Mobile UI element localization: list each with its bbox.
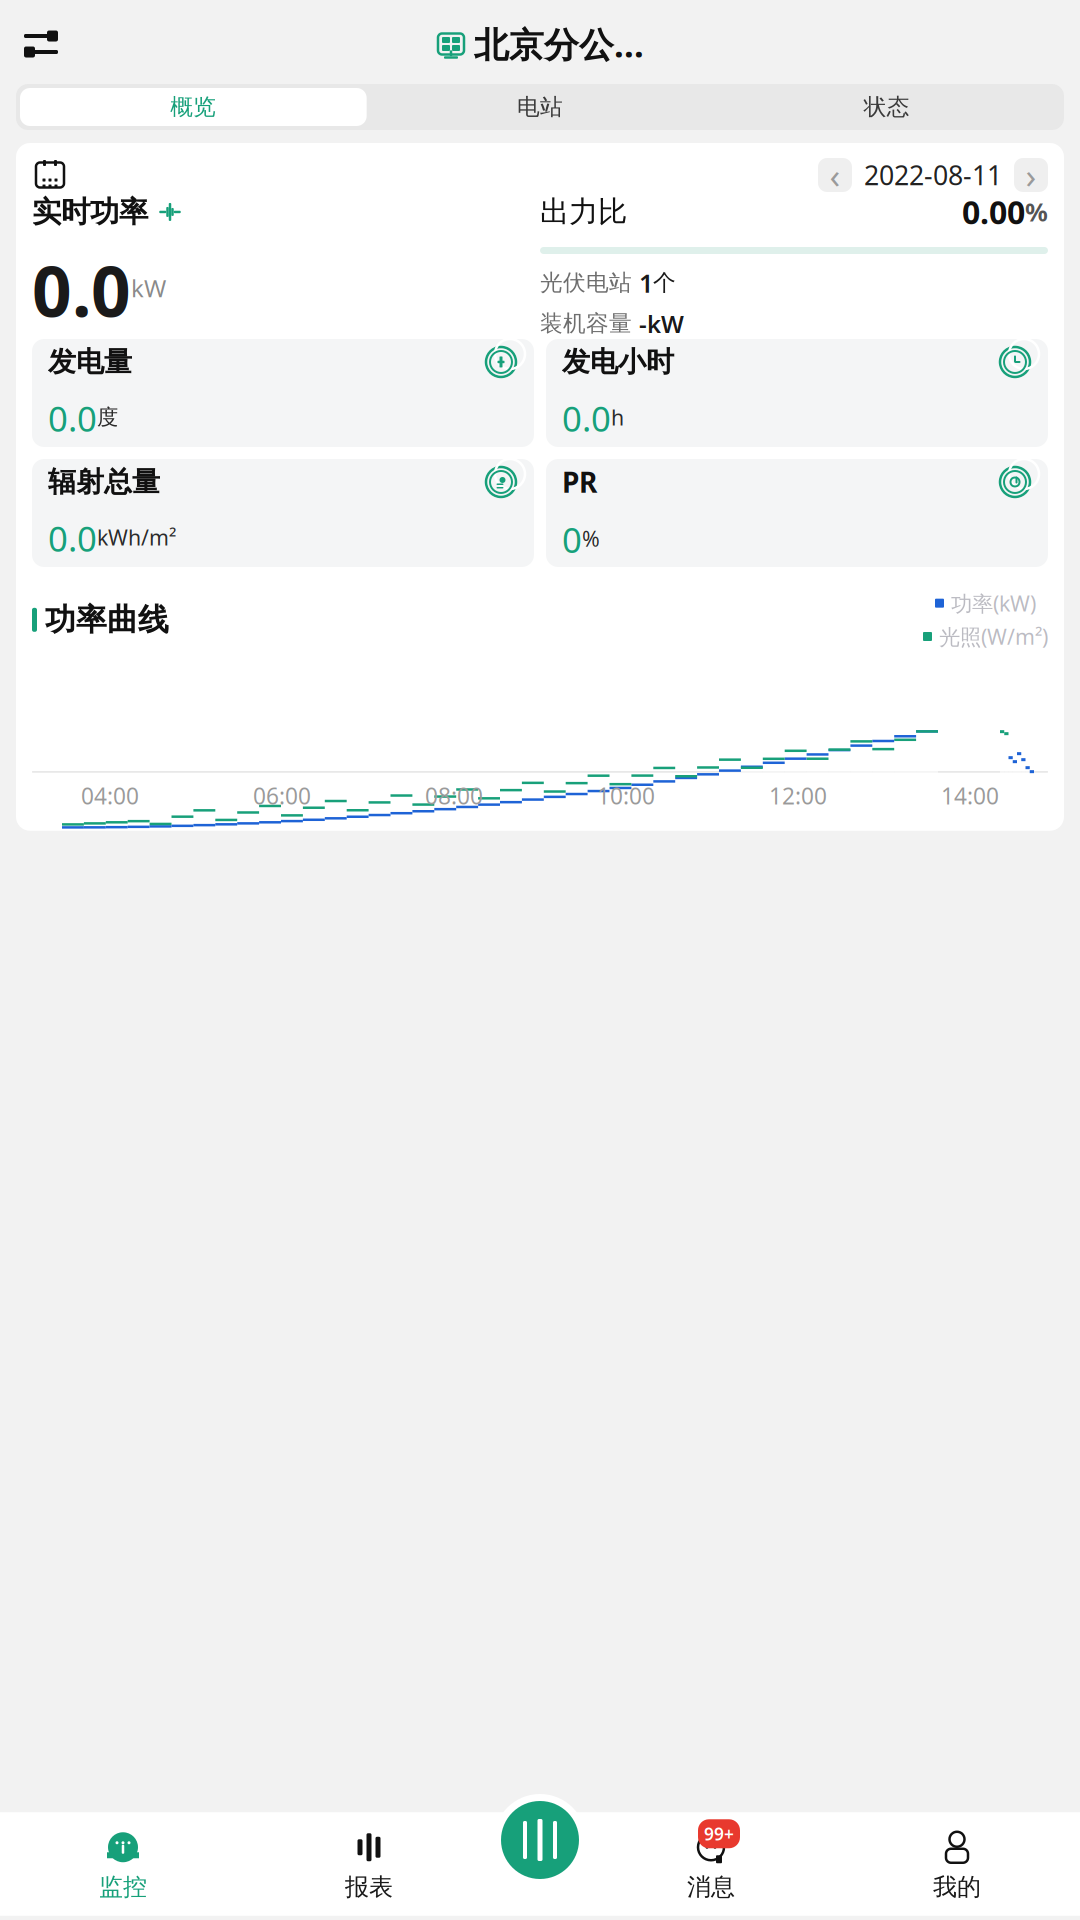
staticText: 0.00 bbox=[962, 190, 1025, 233]
staticText: 状态 bbox=[864, 93, 910, 121]
staticText: 0.0 bbox=[32, 244, 131, 336]
staticText: 装机容量 bbox=[540, 310, 639, 337]
staticText: 99+ bbox=[704, 1822, 734, 1845]
staticText: 2022-08-11 bbox=[864, 157, 1002, 193]
staticText: % bbox=[582, 524, 600, 553]
staticText: 辐射总量 bbox=[48, 465, 160, 499]
staticText: 光伏电站 bbox=[540, 269, 639, 297]
staticText: 北京分公... bbox=[474, 21, 644, 67]
staticText: 电站 bbox=[517, 93, 563, 121]
staticText: 发电量 bbox=[48, 345, 132, 379]
staticText: 个 bbox=[653, 269, 676, 297]
button[interactable]: Switch bbox=[14, 17, 68, 71]
staticText: 我的 bbox=[933, 1872, 981, 1902]
staticText: 08:00 bbox=[425, 781, 483, 811]
staticText: 光照(W/m²) bbox=[939, 622, 1048, 651]
staticText: 报表 bbox=[345, 1872, 393, 1902]
button[interactable]: 发电小时 bbox=[546, 339, 1048, 447]
staticText: 概览 bbox=[170, 93, 216, 121]
button[interactable]: 报表 bbox=[246, 1828, 492, 1902]
button[interactable]: 电站 bbox=[367, 88, 713, 126]
staticText: 度 bbox=[97, 404, 118, 430]
staticText: 0.0 bbox=[48, 395, 97, 441]
staticText: 0.0 bbox=[562, 395, 611, 441]
button[interactable]: Previous day bbox=[818, 158, 852, 192]
staticText: 1 bbox=[639, 266, 653, 300]
button[interactable]: 状态 bbox=[713, 88, 1060, 126]
staticText: 12:00 bbox=[769, 781, 827, 811]
staticText: % bbox=[1025, 195, 1048, 228]
button[interactable]: 99+ bbox=[588, 1828, 834, 1902]
staticText: › bbox=[1025, 152, 1036, 198]
staticText: 功率(kW) bbox=[951, 589, 1036, 617]
button[interactable]: Next day bbox=[1014, 158, 1048, 192]
staticText: 监控 bbox=[99, 1872, 147, 1902]
staticText: 14:00 bbox=[941, 781, 999, 811]
staticText: 0 bbox=[562, 517, 582, 563]
staticText: 10:00 bbox=[597, 781, 655, 811]
staticText: 实时功率 bbox=[32, 194, 148, 230]
button[interactable]: PR bbox=[546, 459, 1048, 567]
button[interactable]: 发电量 bbox=[32, 339, 534, 447]
button[interactable]: Calendar bbox=[32, 157, 68, 193]
button[interactable]: 监控 bbox=[0, 1828, 246, 1902]
button[interactable]: Scan bbox=[494, 1794, 586, 1886]
staticText: PR bbox=[562, 463, 597, 501]
staticText: h bbox=[611, 403, 624, 431]
button[interactable]: 辐射总量 bbox=[32, 459, 534, 567]
staticText: 06:00 bbox=[253, 781, 311, 811]
button[interactable]: 概览 bbox=[20, 88, 367, 126]
staticText: -kW bbox=[639, 308, 684, 339]
button[interactable]: 我的 bbox=[834, 1828, 1080, 1902]
staticText: 04:00 bbox=[81, 781, 139, 811]
staticText: 消息 bbox=[687, 1872, 735, 1902]
staticText: 出力比 bbox=[540, 194, 627, 230]
staticText: 发电小时 bbox=[562, 345, 674, 379]
staticText: kW bbox=[131, 272, 166, 304]
staticText: ‹ bbox=[829, 152, 840, 198]
staticText: kWh/m² bbox=[97, 523, 176, 551]
staticText: 功率曲线 bbox=[45, 601, 169, 639]
staticText: 0.0 bbox=[48, 515, 97, 561]
